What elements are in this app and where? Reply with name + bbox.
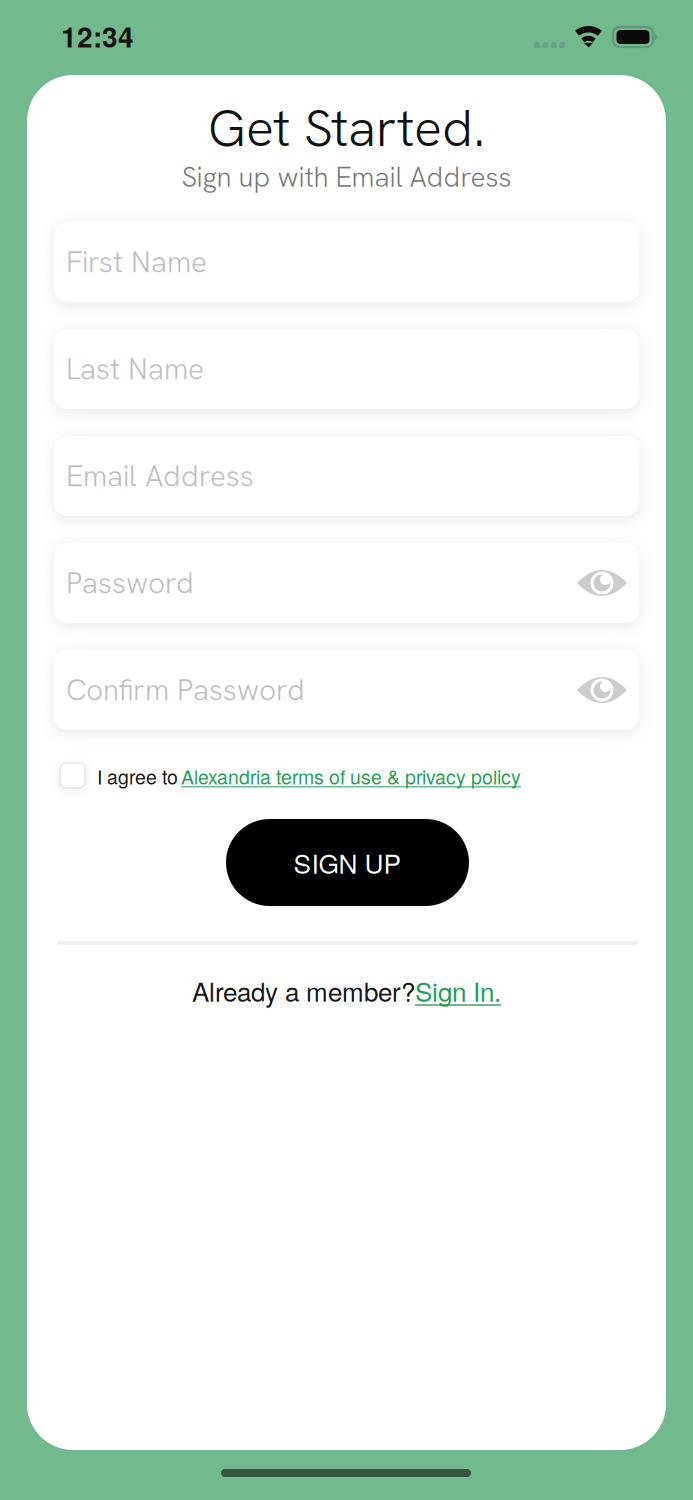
button[interactable]: Alexandria terms of use & privacy policy: [181, 762, 521, 790]
staticText: Sign In.: [415, 972, 501, 1009]
button[interactable]: Sign In.: [415, 972, 501, 1009]
button[interactable]: SIGN UP: [226, 819, 469, 906]
button[interactable]: Last Name: [54, 329, 639, 409]
staticText: Get Started.: [208, 94, 485, 162]
staticText: Alexandria terms of use & privacy policy: [181, 762, 521, 790]
button[interactable]: Email Address: [54, 436, 639, 516]
button[interactable]: Agree to terms: [60, 763, 85, 788]
staticText: Confirm Password: [66, 671, 305, 709]
staticText: 12:34: [61, 16, 134, 56]
staticText: Email Address: [66, 457, 254, 495]
button[interactable]: Password: [54, 543, 639, 623]
staticText: SIGN UP: [293, 844, 401, 881]
button[interactable]: First Name: [54, 222, 639, 302]
button[interactable]: Confirm Password: [54, 650, 639, 730]
staticText: Last Name: [66, 350, 204, 388]
staticText: First Name: [66, 243, 207, 281]
staticText: I agree to: [97, 762, 178, 790]
staticText: Password: [66, 564, 194, 602]
staticText: Already a member?: [192, 972, 415, 1009]
staticText: Sign up with Email Address: [181, 159, 511, 195]
